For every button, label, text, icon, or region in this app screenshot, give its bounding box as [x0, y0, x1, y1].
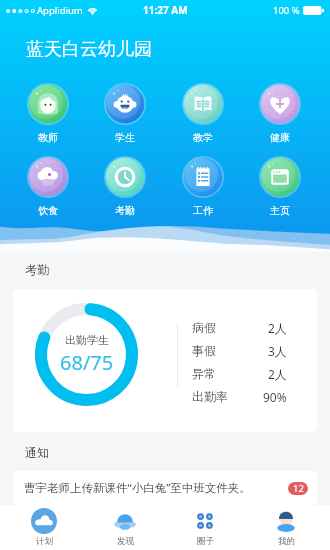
staticText: 工作 [193, 204, 213, 217]
button[interactable]: 教师 [14, 82, 82, 144]
button[interactable]: 发现 [88, 508, 162, 547]
staticText: 通知 [25, 445, 49, 460]
staticText: 2人 [268, 320, 287, 336]
staticText: 出勤学生 [65, 333, 109, 347]
staticText: 12 [293, 482, 304, 495]
button[interactable]: 工作 [169, 155, 237, 217]
button[interactable]: 考勤 [91, 155, 159, 217]
staticText: 健康 [270, 131, 290, 144]
staticText: 90% [263, 389, 287, 405]
staticText: 68/75 [60, 349, 114, 376]
staticText: 100 % [273, 4, 300, 17]
button[interactable]: 计划 [7, 508, 81, 547]
staticText: 考勤 [25, 262, 49, 277]
staticText: 出勤率 [192, 389, 228, 404]
button[interactable]: 我的 [249, 508, 323, 547]
button[interactable]: 饮食 [14, 155, 82, 217]
staticText: 主页 [270, 204, 290, 217]
staticText: 计划 [36, 536, 53, 547]
staticText: 2人 [268, 366, 287, 382]
button[interactable]: 圈子 [168, 508, 242, 547]
button[interactable]: 健康 [246, 82, 314, 144]
staticText: 圈子 [197, 536, 214, 547]
staticText: 曹宇老师上传新课件“小白兔”至中班文件夹。 [24, 480, 251, 496]
staticText: 教学 [193, 131, 213, 144]
button[interactable]: 教学 [169, 82, 237, 144]
staticText: 3人 [268, 343, 287, 359]
staticText: 病假 [192, 320, 216, 335]
staticText: 事假 [192, 343, 216, 358]
staticText: 发现 [117, 536, 134, 547]
staticText: 蓝天白云幼儿园 [26, 38, 152, 61]
button[interactable]: 曹宇老师上传新课件“小白兔”至中班文件夹。 [13, 471, 317, 505]
staticText: 异常 [192, 366, 216, 381]
button[interactable]: 学生 [91, 82, 159, 144]
button[interactable]: 出勤学生 [13, 289, 317, 432]
button[interactable]: 主页 [246, 155, 314, 217]
staticText: 考勤 [115, 204, 135, 217]
staticText: 教师 [38, 131, 58, 144]
staticText: 我的 [278, 536, 295, 547]
staticText: 11:27 AM [143, 3, 188, 17]
staticText: Applidium [37, 4, 83, 17]
staticText: 学生 [115, 131, 135, 144]
staticText: 饮食 [38, 204, 58, 217]
